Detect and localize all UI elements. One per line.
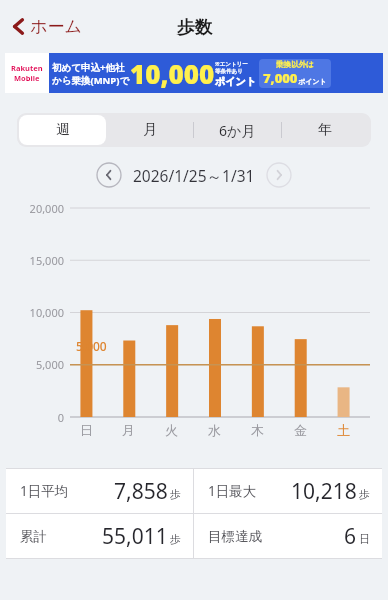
staticText: 目標達成 <box>208 528 262 545</box>
staticText: 歩 <box>359 487 370 501</box>
staticText: Mobile <box>14 73 40 83</box>
staticText: から乗換(MNP)で <box>52 74 130 87</box>
button[interactable]: 次の週 <box>266 162 292 188</box>
staticText: 年 <box>318 121 332 139</box>
staticText: ポイント <box>215 75 256 88</box>
button[interactable]: 6か月 <box>193 115 281 145</box>
staticText: 月 <box>143 121 157 139</box>
button[interactable]: 楽天モバイル 広告 <box>5 53 383 93</box>
staticText: 土 <box>337 422 350 438</box>
staticText: 55,011 <box>102 522 168 551</box>
button[interactable]: 月 <box>106 115 193 145</box>
staticText: 7,000 <box>263 69 298 87</box>
button[interactable]: 1日平均 <box>6 469 193 513</box>
button[interactable]: 週 <box>19 115 106 145</box>
staticText: 6か月 <box>219 121 256 140</box>
staticText: 10,218 <box>291 477 357 506</box>
staticText: 水 <box>208 422 221 438</box>
button[interactable]: ホーム <box>8 10 86 43</box>
staticText: 金 <box>294 422 307 438</box>
staticText: Rakuten <box>11 63 43 73</box>
staticText: 2026/1/25～1/31 <box>133 165 255 186</box>
staticText: 1日平均 <box>20 482 69 500</box>
button[interactable]: 前の週 <box>96 162 122 188</box>
button[interactable]: 累計 <box>6 514 193 558</box>
staticText: 5,000 <box>76 338 107 354</box>
button[interactable]: 年 <box>281 115 369 145</box>
staticText: 歩数 <box>177 16 212 38</box>
staticText: 等条件あり <box>215 68 243 75</box>
staticText: 日 <box>359 532 370 546</box>
staticText: 0 <box>0 410 64 425</box>
button[interactable]: 1日最大 <box>194 469 382 513</box>
staticText: 乗換以外は <box>276 60 314 69</box>
staticText: 木 <box>251 422 264 438</box>
staticText: 歩 <box>170 487 181 501</box>
button[interactable]: 目標達成 <box>194 514 382 558</box>
staticText: ※エントリー <box>215 60 248 68</box>
staticText: 7,858 <box>114 477 168 506</box>
staticText: 初めて申込+他社 <box>52 61 125 74</box>
staticText: 15,000 <box>0 253 64 268</box>
staticText: 20,000 <box>0 201 64 216</box>
staticText: 歩 <box>170 532 181 546</box>
staticText: 累計 <box>20 528 47 545</box>
staticText: 10,000 <box>130 56 215 91</box>
staticText: 月 <box>122 422 135 438</box>
staticText: 日 <box>80 422 93 438</box>
staticText: ポイント <box>298 77 327 86</box>
staticText: 5,000 <box>0 357 64 372</box>
staticText: 週 <box>56 121 70 139</box>
staticText: ホーム <box>30 16 82 37</box>
staticText: 1日最大 <box>208 482 257 500</box>
staticText: 火 <box>165 422 178 438</box>
staticText: 6 <box>344 522 357 551</box>
staticText: 10,000 <box>0 305 64 320</box>
